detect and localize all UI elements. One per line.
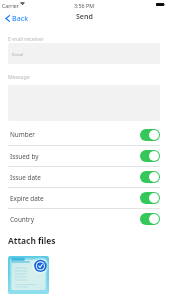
button[interactable]: Issue date [8,167,160,187]
staticText: Issued by [10,152,39,161]
staticText: Attach files [8,235,56,246]
staticText: Issue date [10,173,41,182]
staticText: Expire date [10,194,44,203]
staticText: Back [12,13,28,23]
staticText: Send [76,12,93,22]
button[interactable]: Issued by [8,146,160,166]
button[interactable]: Expire date [8,188,160,208]
button[interactable]: Number [8,124,160,145]
button[interactable]: Country [8,209,160,229]
button[interactable]: Attached certificate [8,256,49,294]
staticText: Message [8,73,30,80]
staticText: Email [12,51,24,57]
staticText: E-mail receiver [8,35,44,42]
button[interactable]: Back [1,11,28,25]
staticText: Country [10,215,35,224]
staticText: 3:56 PM [74,2,95,9]
staticText: Carrier [2,2,19,9]
staticText: Number [10,130,35,139]
